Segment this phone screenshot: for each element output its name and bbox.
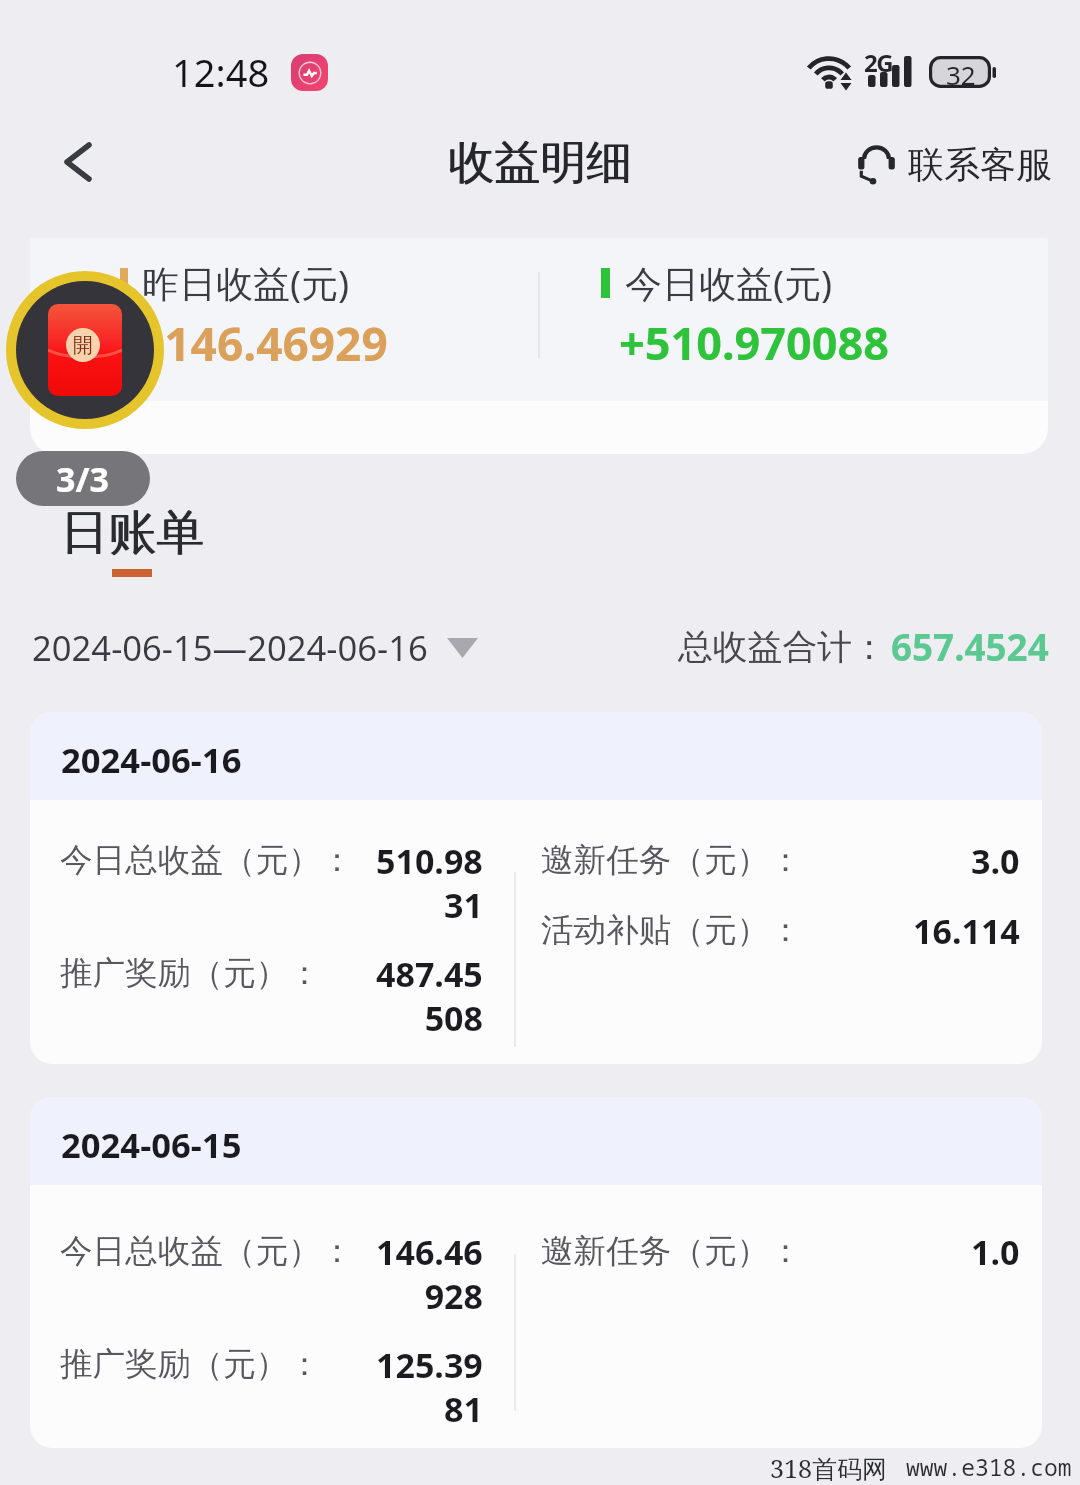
staticText: 3.0	[971, 838, 1020, 882]
button[interactable]: 2024-06-16	[30, 712, 1042, 1064]
staticText: 12:48	[172, 46, 270, 98]
staticText: 510.98	[376, 838, 483, 882]
staticText: 125.39	[376, 1342, 483, 1386]
staticText: 推广奖励（元）：	[60, 1344, 321, 1385]
staticText: 318首码网	[770, 1451, 887, 1485]
staticText: www.e318.com	[906, 1451, 1072, 1482]
staticText: 2G	[864, 46, 892, 79]
button[interactable]: 3/3	[16, 451, 150, 506]
staticText: 508	[424, 995, 483, 1038]
staticText: 邀新任务（元）：	[541, 840, 802, 881]
staticText: +510.970088	[619, 312, 890, 373]
staticText: 2024-06-15	[61, 1121, 242, 1168]
staticText: 146.46	[376, 1229, 483, 1273]
staticText: 2024-06-15—2024-06-16	[32, 624, 428, 671]
staticText: 今日总收益（元）：	[60, 840, 354, 881]
staticText: 1.0	[971, 1229, 1020, 1273]
staticText: 总收益合计：	[678, 625, 887, 669]
staticText: 16.114	[913, 908, 1020, 952]
staticText: 活动补贴（元）：	[541, 910, 802, 951]
staticText: 3/3	[56, 456, 110, 502]
staticText: 昨日收益(元)	[142, 257, 350, 308]
staticText: 今日总收益（元）：	[60, 1231, 354, 1272]
button[interactable]: Open red packet	[16, 281, 154, 419]
staticText: 联系客服	[908, 142, 1052, 187]
staticText: +146.46929	[138, 312, 388, 375]
staticText: 928	[424, 1273, 483, 1316]
staticText: 今日收益(元)	[625, 257, 833, 308]
button[interactable]: 2024-06-15—2024-06-16	[22, 614, 492, 680]
staticText: 81	[444, 1386, 483, 1429]
staticText: 487.45	[376, 951, 483, 995]
staticText: 日账单	[61, 503, 205, 563]
button[interactable]: Back	[40, 124, 116, 200]
staticText: 推广奖励（元）：	[60, 953, 321, 994]
button[interactable]: 2024-06-15	[30, 1097, 1042, 1448]
staticText: 開	[73, 333, 93, 358]
staticText: 32	[946, 57, 976, 92]
staticText: 邀新任务（元）：	[541, 1231, 802, 1272]
staticText: 收益明细	[449, 134, 633, 192]
staticText: 收益明细	[448, 134, 632, 192]
staticText: 日账单	[60, 503, 204, 563]
button[interactable]: 联系客服	[851, 136, 1058, 193]
staticText: 657.4524	[891, 622, 1049, 672]
staticText: 2024-06-16	[61, 736, 242, 783]
staticText: 31	[444, 882, 483, 925]
